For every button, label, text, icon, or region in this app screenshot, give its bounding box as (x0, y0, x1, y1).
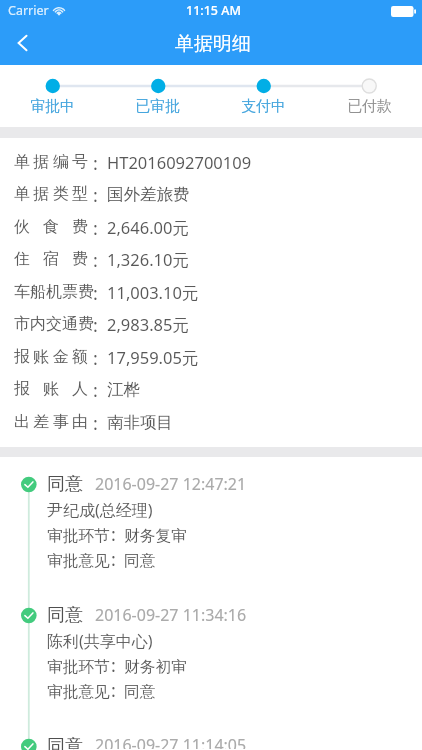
staticText: : (93, 411, 98, 433)
staticText: 人 (72, 379, 88, 399)
staticText: 尹纪成(总经理) (47, 499, 153, 521)
staticText: 市 (14, 314, 30, 334)
staticText: 费 (72, 217, 88, 237)
staticText: 据 (33, 184, 49, 204)
staticText: : (111, 547, 116, 572)
staticText: : (111, 522, 116, 547)
staticText: 差 (33, 412, 49, 432)
button[interactable]: 支付中 (210, 97, 316, 116)
staticText: 审批中 (30, 97, 75, 116)
staticText: 11:15 AM (186, 2, 241, 19)
staticText: 已审批 (135, 97, 180, 116)
staticText: 类 (53, 184, 69, 204)
staticText: 通 (62, 314, 78, 334)
button[interactable]: Back (0, 20, 46, 65)
staticText: : (93, 378, 98, 400)
button[interactable]: 审批中 (0, 97, 105, 116)
staticText: 陈利(共享中心) (47, 630, 153, 652)
staticText: 审批环节 (47, 657, 110, 677)
staticText: 费 (78, 314, 88, 334)
staticText: : (93, 248, 98, 270)
staticText: 同意 (124, 551, 156, 571)
staticText: 住 (14, 249, 30, 269)
staticText: : (93, 346, 98, 368)
staticText: 同意 (47, 735, 83, 750)
staticText: 事 (53, 412, 69, 432)
staticText: 费 (78, 282, 88, 302)
staticText: Carrier (8, 2, 49, 19)
staticText: 型 (72, 184, 88, 204)
button[interactable]: 已付款 (316, 97, 422, 116)
staticText: 审批环节 (47, 526, 110, 546)
staticText: 财务初审 (124, 657, 187, 677)
staticText: 出 (14, 412, 30, 432)
staticText: : (111, 678, 116, 703)
staticText: 额 (72, 347, 88, 367)
staticText: : (93, 216, 98, 238)
staticText: : (93, 151, 98, 173)
staticText: 伙 (14, 217, 30, 237)
staticText: 同意 (47, 604, 83, 627)
staticText: 宿 (43, 249, 59, 269)
staticText: 账 (33, 347, 49, 367)
staticText: 11,003.10元 (107, 281, 199, 303)
staticText: 1,326.10元 (107, 248, 189, 270)
staticText: 单 (14, 184, 30, 204)
button[interactable]: 已审批 (105, 97, 210, 116)
staticText: 同意 (124, 682, 156, 702)
staticText: 编 (53, 152, 69, 172)
staticText: 账 (43, 379, 59, 399)
staticText: 食 (43, 217, 59, 237)
staticText: 2016-09-27 11:34:16 (95, 604, 247, 626)
staticText: 审批意见 (47, 682, 110, 702)
staticText: 金 (53, 347, 69, 367)
staticText: 号 (72, 152, 88, 172)
staticText: 审批意见 (47, 551, 110, 571)
staticText: : (93, 281, 98, 303)
staticText: 2016-09-27 11:14:05 (95, 734, 247, 749)
staticText: : (93, 313, 98, 335)
staticText: 单 (14, 152, 30, 172)
staticText: 内 (30, 314, 46, 334)
staticText: 车 (14, 282, 30, 302)
staticText: 票 (62, 282, 78, 302)
staticText: 财务复审 (124, 526, 187, 546)
staticText: 已付款 (347, 97, 392, 116)
staticText: 同意 (47, 473, 83, 496)
staticText: 17,959.05元 (107, 346, 199, 368)
staticText: 机 (46, 282, 62, 302)
staticText: 费 (72, 249, 88, 269)
staticText: 由 (72, 412, 88, 432)
staticText: 据 (33, 152, 49, 172)
staticText: 支付中 (241, 97, 286, 116)
staticText: 国外差旅费 (107, 184, 190, 205)
staticText: 报 (14, 347, 30, 367)
staticText: 南非项目 (107, 412, 173, 433)
staticText: 交 (46, 314, 62, 334)
staticText: 2,983.85元 (107, 313, 189, 335)
staticText: : (93, 183, 98, 205)
staticText: 江桦 (107, 379, 140, 400)
staticText: 单据明细 (175, 32, 251, 56)
staticText: : (111, 653, 116, 678)
staticText: 报 (14, 379, 30, 399)
staticText: 2016-09-27 12:47:21 (95, 473, 247, 495)
staticText: 船 (30, 282, 46, 302)
staticText: HT2016092700109 (107, 151, 252, 173)
staticText: 2,646.00元 (107, 216, 189, 238)
